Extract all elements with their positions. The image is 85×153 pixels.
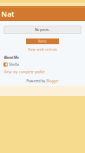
staticText: Blogger xyxy=(47,79,59,83)
button[interactable]: Home xyxy=(26,38,59,44)
staticText: View my complete profile xyxy=(4,70,45,74)
button[interactable]: View my complete profile xyxy=(0,70,85,74)
button[interactable]: Blogger xyxy=(47,79,59,83)
button[interactable]: Nat xyxy=(0,6,85,21)
staticText: Home xyxy=(38,39,47,43)
button[interactable]: View web version xyxy=(28,47,57,51)
button[interactable]: Shella xyxy=(0,62,85,66)
staticText: About Me xyxy=(4,55,19,60)
staticText: Powered by xyxy=(26,79,45,83)
staticText: Nat xyxy=(1,9,14,19)
staticText: No posts. xyxy=(35,28,50,32)
staticText: Shella xyxy=(9,62,19,67)
staticText: View web version xyxy=(28,47,57,52)
